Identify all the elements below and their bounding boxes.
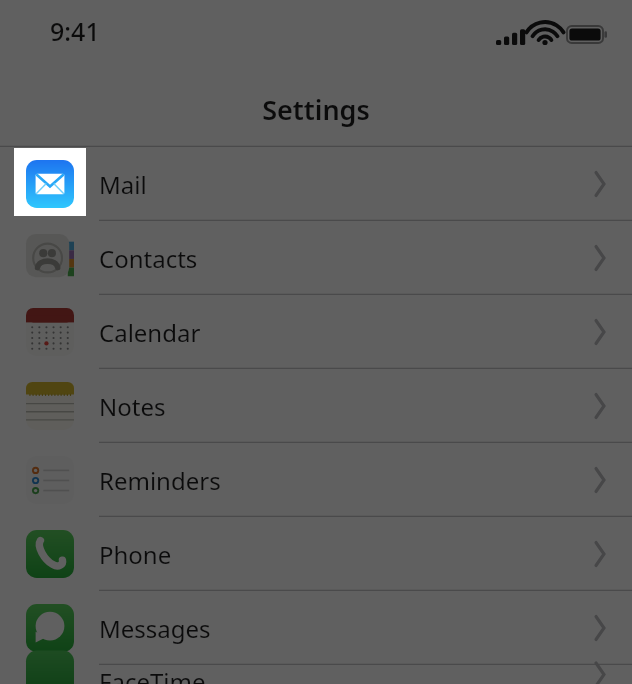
staticText: Notes bbox=[99, 390, 166, 423]
button[interactable]: Calendar bbox=[0, 295, 632, 369]
staticText: Contacts bbox=[99, 242, 198, 275]
button[interactable]: Contacts bbox=[0, 221, 632, 295]
staticText: Phone bbox=[99, 538, 172, 571]
staticText: Reminders bbox=[99, 464, 221, 497]
staticText: Messages bbox=[99, 612, 211, 645]
button[interactable]: Notes bbox=[0, 369, 632, 443]
button[interactable]: FaceTime bbox=[0, 665, 632, 684]
button[interactable]: Mail bbox=[0, 147, 632, 221]
staticText: Calendar bbox=[99, 316, 201, 349]
button[interactable]: Phone bbox=[0, 517, 632, 591]
staticText: Settings bbox=[262, 91, 370, 128]
staticText: FaceTime bbox=[99, 665, 206, 684]
button[interactable]: Messages bbox=[0, 591, 632, 665]
staticText: Mail bbox=[99, 168, 147, 201]
button[interactable]: Reminders bbox=[0, 443, 632, 517]
other: Highlighted Mail settings bbox=[0, 0, 632, 684]
staticText: 9:41 bbox=[50, 14, 100, 48]
